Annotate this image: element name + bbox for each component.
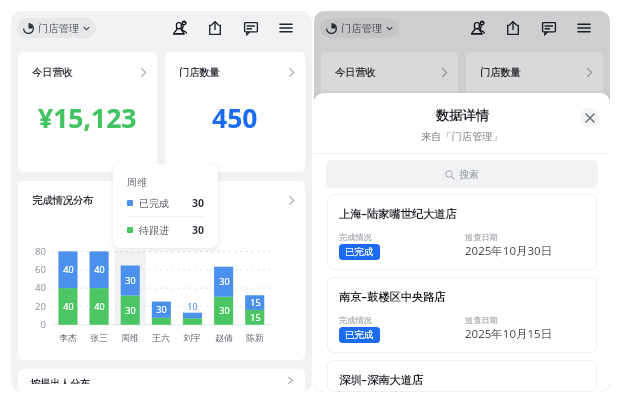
staticText: 南京–鼓楼区中央路店 bbox=[339, 289, 446, 304]
staticText: 按提出人分布 bbox=[30, 377, 90, 384]
staticText: 40 bbox=[94, 263, 105, 275]
staticText: ¥15,123 bbox=[340, 100, 439, 136]
staticText: 80 bbox=[35, 245, 46, 258]
staticText: 40 bbox=[63, 263, 74, 275]
staticText: 已完成 bbox=[345, 329, 374, 341]
button[interactable]: 已完成 bbox=[339, 244, 380, 260]
staticText: 搜索 bbox=[459, 168, 479, 181]
button[interactable]: Close bbox=[580, 108, 599, 127]
staticText: 巡查日期 bbox=[465, 232, 498, 242]
staticText: 完成情况分布 bbox=[335, 194, 397, 207]
staticText: 40 bbox=[366, 263, 377, 275]
staticText: 数据详情 bbox=[436, 107, 489, 124]
staticText: 刘宇 bbox=[486, 333, 504, 344]
button[interactable]: Comments bbox=[541, 20, 557, 36]
button[interactable]: Share bbox=[207, 20, 223, 36]
staticText: 完成情况 bbox=[339, 232, 372, 242]
staticText: 完成情况 bbox=[339, 315, 372, 325]
staticText: 60 bbox=[35, 263, 46, 276]
staticText: 赵倩 bbox=[518, 333, 536, 344]
button[interactable]: 今日营收 bbox=[321, 52, 458, 172]
button[interactable]: 门店数量 bbox=[165, 52, 305, 172]
staticText: 30 bbox=[522, 275, 533, 287]
staticText: 30 bbox=[219, 304, 230, 316]
staticText: 待跟进 bbox=[139, 224, 169, 237]
staticText: 上海–陆家嘴世纪大道店 bbox=[339, 206, 457, 221]
staticText: 15 bbox=[250, 296, 261, 308]
staticText: 周维 bbox=[127, 176, 147, 189]
staticText: 80 bbox=[338, 245, 349, 258]
staticText: 已完成 bbox=[139, 197, 169, 210]
staticText: 王六 bbox=[455, 333, 473, 344]
staticText: 15 bbox=[250, 311, 261, 323]
button[interactable]: 门店管理 bbox=[320, 18, 399, 38]
button[interactable]: 门店数量 bbox=[466, 52, 603, 172]
staticText: 20 bbox=[35, 300, 46, 313]
staticText: 0 bbox=[40, 318, 46, 331]
button[interactable]: Share bbox=[505, 20, 521, 36]
staticText: 450 bbox=[212, 100, 258, 136]
staticText: 陈新 bbox=[246, 333, 264, 344]
button[interactable]: Contacts bbox=[172, 20, 188, 36]
staticText: 40 bbox=[366, 300, 377, 312]
button[interactable]: 按提出人分布 bbox=[18, 369, 305, 392]
staticText: 巡查日期 bbox=[465, 315, 498, 325]
staticText: 30 bbox=[219, 275, 230, 287]
staticText: 门店管理 bbox=[38, 22, 80, 35]
staticText: 40 bbox=[35, 281, 46, 294]
staticText: 完成情况分布 bbox=[32, 194, 94, 207]
staticText: 40 bbox=[397, 263, 408, 275]
staticText: 30 bbox=[156, 303, 167, 315]
staticText: 门店管理 bbox=[341, 22, 383, 35]
staticText: 30 bbox=[125, 274, 136, 286]
button[interactable]: 今日营收 bbox=[18, 52, 157, 172]
button[interactable]: Contacts bbox=[470, 20, 486, 36]
staticText: 周维 bbox=[121, 333, 139, 344]
staticText: 来自「门店管理」 bbox=[421, 130, 503, 143]
staticText: 2025年10月30日 bbox=[465, 243, 553, 259]
staticText: 30 bbox=[192, 223, 205, 237]
staticText: 30 bbox=[125, 304, 136, 316]
staticText: 40 bbox=[338, 281, 349, 294]
button[interactable]: Menu bbox=[278, 20, 294, 36]
button[interactable]: Comments bbox=[243, 20, 259, 36]
staticText: 李杰 bbox=[59, 333, 77, 344]
button[interactable]: 深圳–深南大道店 bbox=[327, 360, 597, 392]
staticText: 0 bbox=[343, 318, 349, 331]
staticText: ¥15,123 bbox=[38, 100, 137, 136]
staticText: 陈新 bbox=[549, 333, 567, 344]
button[interactable]: 上海–陆家嘴世纪大道店 bbox=[327, 194, 597, 270]
staticText: 张三 bbox=[90, 333, 108, 344]
button[interactable]: 已完成 bbox=[339, 327, 380, 343]
staticText: 40 bbox=[63, 300, 74, 312]
staticText: 20 bbox=[338, 300, 349, 313]
staticText: 今日营收 bbox=[335, 66, 376, 79]
staticText: 今日营收 bbox=[32, 66, 73, 79]
button[interactable]: 按提出人分布 bbox=[321, 369, 603, 392]
button[interactable]: 南京–鼓楼区中央路店 bbox=[327, 277, 597, 353]
staticText: 李杰 bbox=[362, 333, 380, 344]
staticText: 赵倩 bbox=[215, 333, 233, 344]
button[interactable]: 搜索 bbox=[326, 160, 598, 188]
staticText: 王六 bbox=[152, 333, 170, 344]
button[interactable]: 门店管理 bbox=[17, 18, 96, 38]
staticText: 门店数量 bbox=[179, 66, 220, 79]
staticText: 40 bbox=[94, 300, 105, 312]
staticText: 10 bbox=[187, 300, 198, 312]
staticText: 30 bbox=[192, 196, 205, 210]
staticText: 深圳–深南大道店 bbox=[339, 372, 423, 387]
staticText: 2025年10月15日 bbox=[465, 326, 553, 342]
staticText: 刘宇 bbox=[183, 333, 201, 344]
staticText: 门店数量 bbox=[480, 66, 521, 79]
staticText: 已完成 bbox=[345, 246, 374, 258]
button[interactable]: Menu bbox=[576, 20, 592, 36]
